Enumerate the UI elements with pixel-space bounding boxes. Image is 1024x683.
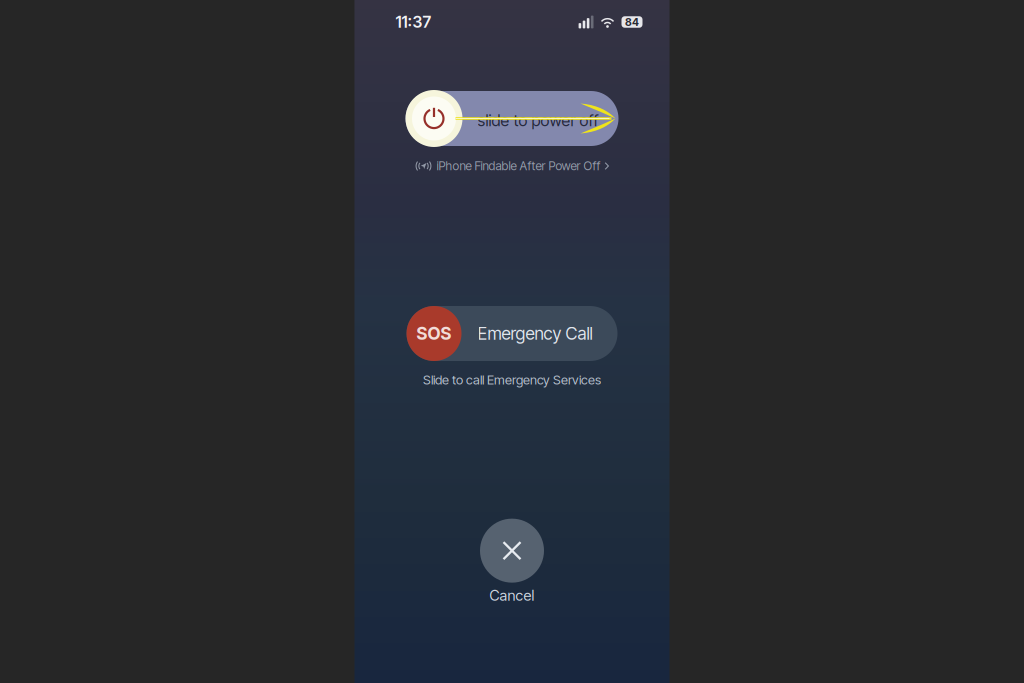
staticText: Emergency Call	[477, 323, 592, 344]
button[interactable]: iPhone Findable After Power Off	[414, 157, 609, 175]
button[interactable]: SOS	[406, 306, 617, 361]
staticText: 11:37	[395, 12, 431, 32]
staticText: 84	[625, 15, 639, 28]
staticText: Cancel	[489, 587, 534, 604]
staticText: SOS	[416, 323, 451, 344]
staticText: iPhone Findable After Power Off	[436, 159, 600, 173]
button[interactable]: Cancel	[480, 519, 544, 604]
staticText: slide to power off	[477, 111, 598, 130]
button[interactable]: slide to power off	[405, 91, 618, 146]
staticText: Slide to call Emergency Services	[423, 372, 601, 388]
